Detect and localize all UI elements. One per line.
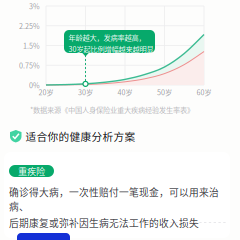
button[interactable]: 重疾险: [4, 152, 230, 238]
staticText: 年龄越大，发病率越高，: [68, 32, 145, 43]
staticText: 适合你的健康分析方案: [25, 128, 135, 144]
staticText: 2.25%: [19, 20, 40, 31]
staticText: 0%: [29, 80, 40, 90]
staticText: 重疾险: [18, 164, 45, 178]
staticText: 后期康复或弥补因生病无法工作的收入损失: [9, 216, 199, 230]
staticText: 1.5%: [23, 40, 40, 51]
staticText: 30岁起比例增幅越来越明显: [68, 44, 153, 54]
staticText: *数据来源《中国人身保险业重大疾病经验发生率表》: [30, 104, 194, 115]
staticText: 60岁: [196, 87, 211, 97]
staticText: 50岁: [157, 87, 172, 97]
staticText: 3%: [29, 1, 40, 11]
staticText: 40岁: [117, 87, 132, 97]
staticText: 30岁: [78, 87, 93, 97]
staticText: 确诊得大病，一次性赔付一笔现金，可以用来治病、: [9, 185, 219, 213]
staticText: 20岁: [38, 87, 53, 97]
staticText: 0.75%: [19, 60, 40, 70]
